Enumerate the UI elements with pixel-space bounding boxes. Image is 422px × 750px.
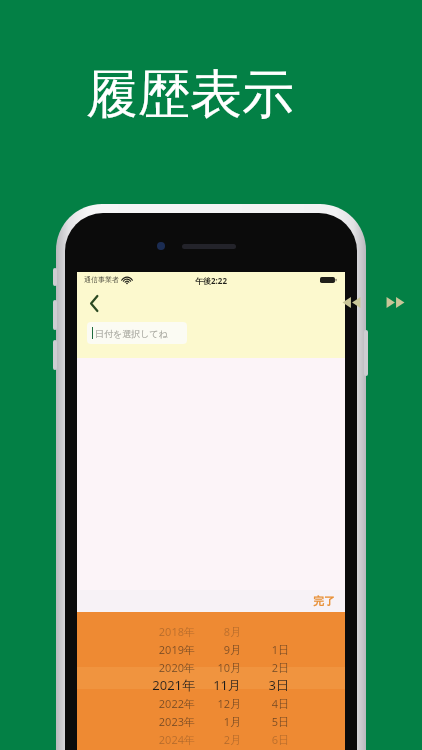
staticText: 5日 [271,714,289,729]
button[interactable]: Fast forward [383,292,407,312]
button[interactable]: 2023年 [77,712,345,730]
staticText: 11月 [213,676,241,694]
button[interactable]: 2020年 [77,658,345,676]
staticText: 通信事業者 [84,275,119,284]
button[interactable]: 2018年 [77,622,345,640]
staticText: 2021年 [152,676,195,694]
staticText: 1日 [271,642,289,657]
staticText: 10月 [217,660,241,675]
staticText: 完了 [313,594,335,608]
staticText: 日付を選択してね [95,328,168,339]
staticText: 2022年 [158,696,195,711]
staticText: 6日 [271,732,289,747]
staticText: 2020年 [158,660,195,675]
staticText: 午後2:22 [195,275,227,286]
staticText: 2018年 [158,624,195,639]
staticText: 9月 [223,642,241,657]
staticText: 1月 [223,714,241,729]
staticText: 2月 [223,732,241,747]
staticText: 8月 [223,624,241,639]
button[interactable]: Back [81,290,107,316]
button[interactable]: Rewind [339,292,363,312]
button[interactable]: 2024年 [77,730,345,748]
button[interactable]: 2019年 [77,640,345,658]
staticText: 2023年 [158,714,195,729]
button[interactable]: 2021年 [77,676,345,694]
button[interactable]: 日付を選択してね [87,322,187,344]
staticText: 2日 [271,660,289,675]
button[interactable]: 完了 [303,592,345,610]
staticText: 12月 [217,696,241,711]
staticText: 2024年 [158,732,195,747]
staticText: 3日 [268,676,289,694]
button[interactable]: 2022年 [77,694,345,712]
staticText: 4日 [271,696,289,711]
staticText: 履歴表示 [86,62,294,128]
staticText: 2019年 [158,642,195,657]
